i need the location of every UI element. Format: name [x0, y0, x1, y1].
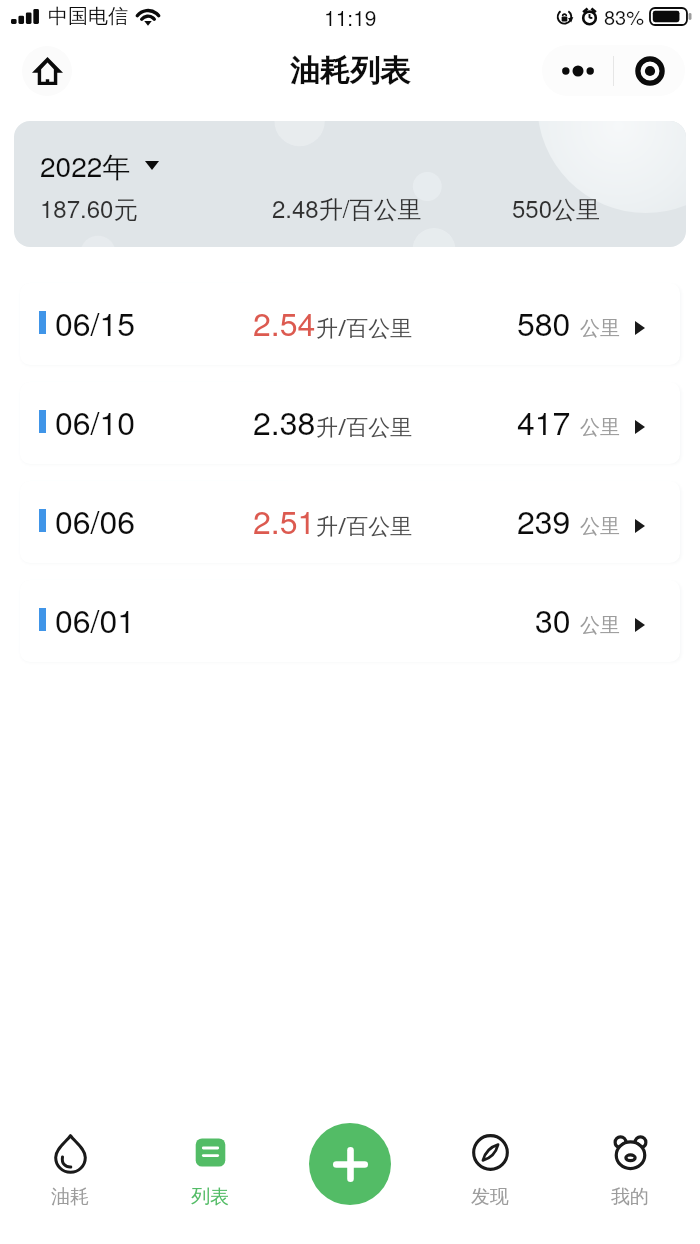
staticText: 升/百公里: [316, 510, 413, 540]
staticText: 2.38: [253, 398, 316, 444]
button[interactable]: 06/01: [20, 580, 680, 662]
button[interactable]: 发现: [420, 1100, 560, 1244]
button[interactable]: 我的: [560, 1100, 700, 1244]
staticText: 06/06: [55, 497, 136, 543]
staticText: 发现: [471, 1185, 509, 1209]
staticText: 83%: [604, 2, 645, 31]
staticText: 239: [517, 497, 571, 543]
staticText: 580: [517, 299, 571, 345]
staticText: 06/15: [55, 299, 136, 345]
staticText: 我的: [611, 1185, 649, 1209]
staticText: 06/01: [55, 596, 136, 642]
staticText: 公里: [580, 415, 620, 440]
staticText: 油耗: [51, 1185, 89, 1209]
staticText: 2.51: [253, 497, 316, 543]
staticText: 升/百公里: [316, 411, 413, 441]
staticText: 06/10: [55, 398, 136, 444]
staticText: 30: [535, 596, 571, 642]
staticText: 油耗列表: [290, 52, 410, 90]
button[interactable]: 2022年: [14, 121, 686, 247]
button[interactable]: Add: [309, 1123, 391, 1205]
button[interactable]: More: [542, 45, 613, 96]
staticText: 中国电信: [48, 4, 128, 29]
staticText: 公里: [580, 613, 620, 638]
button[interactable]: Close: [614, 45, 685, 96]
button[interactable]: 列表: [140, 1100, 280, 1244]
staticText: 升/百公里: [316, 312, 413, 342]
staticText: 11:19: [324, 2, 377, 32]
staticText: 公里: [580, 316, 620, 341]
staticText: 417: [517, 398, 571, 444]
staticText: 公里: [580, 514, 620, 539]
button[interactable]: Home: [22, 46, 72, 96]
staticText: 187.60元: [40, 190, 138, 225]
button[interactable]: 油耗: [0, 1100, 140, 1244]
staticText: 列表: [191, 1185, 229, 1209]
staticText: 2.48升/百公里: [272, 190, 422, 225]
staticText: 2.54: [253, 299, 316, 345]
staticText: 550公里: [512, 190, 601, 225]
staticText: 2022年: [40, 145, 131, 185]
button[interactable]: 06/15: [20, 283, 680, 365]
button[interactable]: 06/06: [20, 481, 680, 563]
button[interactable]: 06/10: [20, 382, 680, 464]
